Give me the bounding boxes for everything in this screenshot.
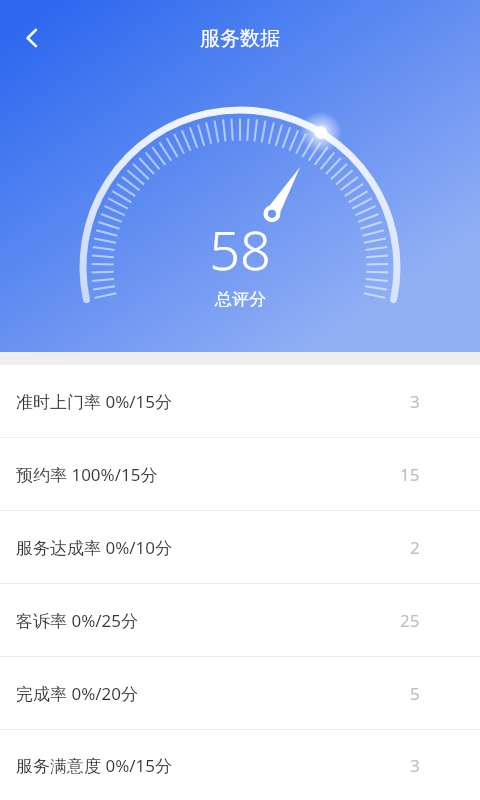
staticText: 15 <box>400 463 420 486</box>
staticText: 5 <box>410 682 420 705</box>
staticText: 服务数据 <box>200 26 280 51</box>
staticText: 25 <box>400 609 420 632</box>
staticText: 完成率 0%/20分 <box>16 682 139 705</box>
staticText: 58 <box>209 212 271 286</box>
staticText: 3 <box>410 390 420 413</box>
staticText: 预约率 100%/15分 <box>16 463 158 486</box>
button[interactable]: 完成率 0%/20分 <box>0 657 480 729</box>
button[interactable]: 服务达成率 0%/10分 <box>0 511 480 583</box>
button[interactable]: 预约率 100%/15分 <box>0 438 480 510</box>
staticText: 服务满意度 0%/15分 <box>16 754 173 777</box>
staticText: 准时上门率 0%/15分 <box>16 390 173 413</box>
button[interactable]: Back <box>4 10 60 66</box>
staticText: 服务达成率 0%/10分 <box>16 536 173 559</box>
button[interactable]: 服务满意度 0%/15分 <box>0 730 480 800</box>
staticText: 总评分 <box>215 289 266 310</box>
staticText: 3 <box>410 754 420 777</box>
button[interactable]: 准时上门率 0%/15分 <box>0 365 480 437</box>
staticText: 客诉率 0%/25分 <box>16 609 139 632</box>
button[interactable]: 客诉率 0%/25分 <box>0 584 480 656</box>
staticText: 2 <box>410 536 420 559</box>
